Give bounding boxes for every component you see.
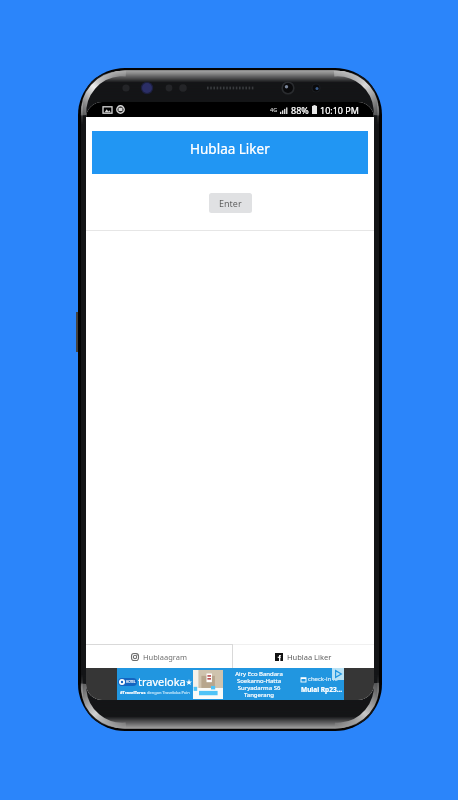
staticText: Enter: [219, 197, 242, 209]
button[interactable]: HOTEL: [117, 668, 344, 700]
button[interactable]: Hublaa Liker tab: [233, 644, 374, 668]
staticText: HOTEL: [126, 680, 136, 684]
other: Hublaagram tab: [131, 653, 139, 661]
staticText: Hublaa Liker: [287, 652, 332, 662]
staticText: #TravelTerus: [120, 690, 146, 695]
other: Hublaa Liker tab: [275, 653, 283, 661]
staticText: Airy Eco Bandara Soekarno-Hatta Suryadar…: [235, 670, 283, 699]
staticText: traveloka: [138, 674, 186, 689]
button[interactable]: Enter: [209, 193, 252, 213]
staticText: dengan Traveloka Poin: [146, 690, 190, 695]
staticText: check-in ...: [308, 675, 338, 683]
staticText: Hublaa Liker: [190, 140, 270, 158]
staticText: Hublaagram: [143, 652, 187, 662]
staticText: 4G: [270, 106, 278, 113]
staticText: Mulai Rp23...: [301, 685, 343, 694]
staticText: 88%: [291, 104, 309, 116]
button[interactable]: Hublaagram tab: [86, 644, 232, 668]
button[interactable]: Hublaa Liker: [92, 131, 368, 174]
staticText: 10:10 PM: [320, 104, 359, 116]
